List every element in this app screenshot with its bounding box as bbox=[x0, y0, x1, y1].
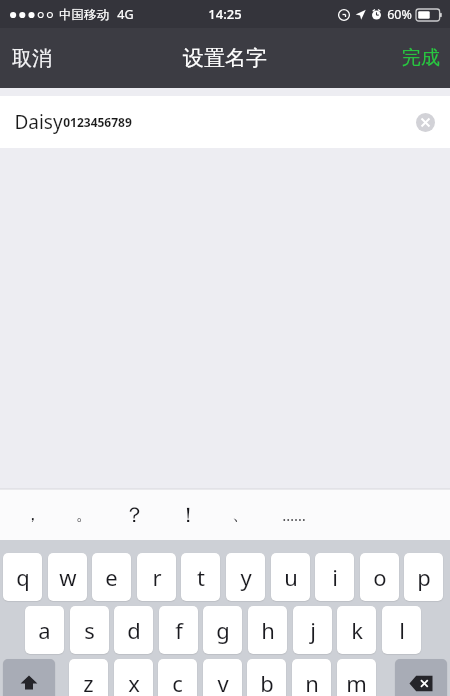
staticText: w bbox=[59, 562, 77, 592]
staticText: g bbox=[216, 615, 230, 645]
staticText: f bbox=[175, 615, 183, 645]
staticText: i bbox=[332, 562, 338, 592]
staticText: 设置名字 bbox=[183, 45, 267, 71]
staticText: h bbox=[261, 615, 275, 645]
staticText: u bbox=[284, 562, 298, 592]
staticText: d bbox=[127, 615, 141, 645]
staticText: e bbox=[105, 562, 118, 592]
button[interactable]: d bbox=[114, 606, 153, 654]
staticText: 取消 bbox=[12, 46, 52, 71]
staticText: a bbox=[38, 615, 51, 645]
button[interactable]: Backspace bbox=[395, 659, 447, 696]
staticText: …… bbox=[282, 505, 306, 525]
button[interactable]: b bbox=[247, 659, 286, 696]
staticText: k bbox=[351, 615, 363, 645]
button[interactable]: m bbox=[337, 659, 376, 696]
staticText: y bbox=[240, 562, 252, 592]
button[interactable]: n bbox=[292, 659, 331, 696]
button[interactable]: k bbox=[337, 606, 376, 654]
button[interactable]: s bbox=[70, 606, 109, 654]
button[interactable]: 取消 bbox=[0, 36, 68, 81]
button[interactable]: u bbox=[271, 553, 310, 601]
staticText: q bbox=[16, 562, 30, 592]
staticText: c bbox=[172, 668, 183, 696]
staticText: x bbox=[128, 668, 140, 696]
staticText: l bbox=[399, 615, 405, 645]
button[interactable]: x bbox=[114, 659, 153, 696]
button[interactable]: q bbox=[3, 553, 42, 601]
staticText: ， bbox=[24, 504, 41, 525]
button[interactable]: y bbox=[226, 553, 265, 601]
button[interactable]: Daisy bbox=[0, 96, 450, 148]
staticText: n bbox=[305, 668, 319, 696]
button[interactable]: a bbox=[25, 606, 64, 654]
button[interactable]: …… bbox=[272, 489, 316, 540]
button[interactable]: h bbox=[248, 606, 287, 654]
staticText: 0123456789 bbox=[63, 114, 132, 130]
button[interactable]: c bbox=[158, 659, 197, 696]
button[interactable]: g bbox=[203, 606, 242, 654]
staticText: t bbox=[197, 562, 205, 592]
button[interactable]: z bbox=[69, 659, 108, 696]
button[interactable]: ， bbox=[10, 489, 54, 540]
staticText: 4G bbox=[117, 6, 134, 23]
staticText: 、 bbox=[232, 504, 249, 525]
staticText: 60% bbox=[387, 6, 412, 23]
staticText: 14:25 bbox=[208, 5, 242, 23]
button[interactable]: i bbox=[315, 553, 354, 601]
button[interactable]: Clear text bbox=[412, 109, 438, 135]
staticText: j bbox=[310, 615, 316, 645]
button[interactable]: r bbox=[137, 553, 176, 601]
button[interactable]: f bbox=[159, 606, 198, 654]
button[interactable]: w bbox=[48, 553, 87, 601]
button[interactable]: o bbox=[360, 553, 399, 601]
button[interactable]: ？ bbox=[112, 489, 156, 540]
button[interactable]: p bbox=[404, 553, 443, 601]
button[interactable]: l bbox=[382, 606, 421, 654]
staticText: ？ bbox=[124, 502, 145, 528]
staticText: m bbox=[346, 668, 367, 696]
staticText: b bbox=[260, 668, 274, 696]
staticText: o bbox=[373, 562, 387, 592]
button[interactable]: 。 bbox=[62, 489, 106, 540]
staticText: 完成 bbox=[402, 46, 440, 70]
staticText: Daisy bbox=[14, 109, 63, 135]
button[interactable]: e bbox=[92, 553, 131, 601]
staticText: r bbox=[152, 562, 162, 592]
button[interactable]: Shift bbox=[3, 659, 55, 696]
button[interactable]: v bbox=[203, 659, 242, 696]
button[interactable]: t bbox=[181, 553, 220, 601]
staticText: 。 bbox=[76, 504, 93, 525]
staticText: z bbox=[83, 668, 94, 696]
staticText: p bbox=[417, 562, 431, 592]
staticText: ！ bbox=[178, 502, 199, 528]
button[interactable]: 完成 bbox=[386, 36, 450, 80]
staticText: s bbox=[84, 615, 95, 645]
button[interactable]: 、 bbox=[218, 489, 262, 540]
button[interactable]: ！ bbox=[166, 489, 210, 540]
button[interactable]: j bbox=[293, 606, 332, 654]
staticText: v bbox=[217, 668, 229, 696]
staticText: 中国移动 bbox=[59, 7, 109, 23]
